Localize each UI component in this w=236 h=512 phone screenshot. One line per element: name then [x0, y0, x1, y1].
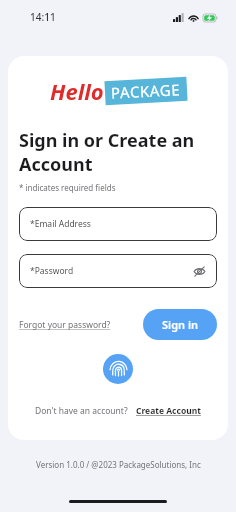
staticText: *Email Address: [30, 218, 91, 230]
staticText: Version 1.0.0 / @2023 PackageSolutions, …: [36, 459, 201, 470]
button[interactable]: *Password: [19, 254, 217, 288]
staticText: Don't have an account?: [35, 405, 128, 417]
staticText: Sign in: [162, 317, 199, 332]
staticText: *Password: [30, 265, 74, 277]
button[interactable]: *Email Address: [19, 207, 217, 241]
button[interactable]: Show password: [189, 261, 209, 281]
staticText: Hello: [50, 76, 104, 106]
button[interactable]: Create Account: [136, 402, 201, 420]
staticText: * indicates required fields: [19, 182, 116, 193]
button[interactable]: Sign in with fingerprint: [103, 354, 133, 384]
staticText: Forgot your password?: [19, 319, 111, 331]
staticText: 14:11: [30, 10, 56, 24]
button[interactable]: Forgot your password?: [19, 315, 111, 335]
staticText: Sign in or Create an Account: [19, 128, 217, 176]
button[interactable]: Sign in: [143, 309, 217, 340]
staticText: PACKAGE: [110, 79, 181, 103]
staticText: Create Account: [136, 405, 201, 417]
